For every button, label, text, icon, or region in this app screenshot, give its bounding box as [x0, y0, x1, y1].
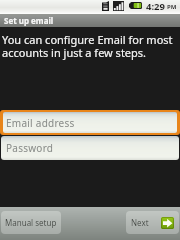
staticText: Set up email	[4, 15, 54, 26]
staticText: Password	[6, 141, 54, 155]
staticText: Next	[131, 217, 149, 228]
staticText: Email address	[6, 116, 75, 130]
staticText: You can configure Email for most account…	[2, 32, 176, 60]
button[interactable]: Next	[126, 211, 179, 234]
staticText: Manual setup	[5, 217, 57, 228]
button[interactable]: Email address	[3, 112, 177, 133]
button[interactable]: Manual setup	[1, 211, 61, 234]
staticText: PM	[167, 3, 177, 11]
button[interactable]: Password	[1, 136, 179, 160]
staticText: 4:29	[146, 0, 165, 11]
